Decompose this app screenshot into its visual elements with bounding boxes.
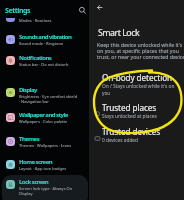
- staticText: Brightness · Eye comfort shield: [19, 94, 78, 99]
- staticText: Themes: [19, 135, 40, 143]
- staticText: On-body detection: [102, 72, 172, 83]
- staticText: Smart Lock: [98, 27, 140, 39]
- staticText: Stays unlocked at places: [102, 113, 157, 120]
- button[interactable]: Notifications: [0, 53, 89, 73]
- staticText: Layout · App icon badges: [19, 166, 67, 171]
- staticText: · Navigation bar: [19, 99, 49, 104]
- button[interactable]: Sounds and vibration: [0, 32, 89, 52]
- button[interactable]: Modes · Routines: [0, 15, 89, 28]
- staticText: Sounds and vibration: [19, 33, 72, 41]
- staticText: Keep this device unlocked while it's on …: [97, 41, 184, 61]
- button[interactable]: Home screen: [0, 157, 89, 177]
- button[interactable]: Themes: [0, 134, 89, 154]
- staticText: Wallpapers · Color palette: [19, 119, 68, 124]
- staticText: Settings: [5, 6, 31, 16]
- staticText: Trusted places: [102, 102, 157, 113]
- staticText: you: [102, 90, 111, 96]
- staticText: Status bar · Do not disturb: [19, 62, 69, 67]
- staticText: Modes · Routines: [19, 18, 52, 23]
- staticText: Home screen: [19, 158, 53, 166]
- button[interactable]: Trusted places: [93, 98, 184, 122]
- staticText: On / Stays unlocked while it's on: [102, 83, 175, 90]
- staticText: Wallpaper and style: [19, 111, 68, 119]
- button[interactable]: Search: [77, 5, 88, 16]
- button[interactable]: Lock screen: [0, 177, 89, 199]
- staticText: Display: [19, 191, 33, 196]
- staticText: Themes · Wallpapers · Icons: [19, 143, 72, 148]
- button[interactable]: Trusted devices: [93, 122, 184, 146]
- staticText: Trusted devices: [102, 126, 160, 137]
- button[interactable]: On-body detection: [93, 68, 184, 92]
- staticText: Sound mode · Ringtone: [19, 41, 64, 46]
- staticText: Notifications: [19, 54, 52, 62]
- staticText: 0 devices added: [102, 137, 139, 144]
- staticText: Screen lock type · Always On: [19, 186, 73, 191]
- button[interactable]: Display: [0, 85, 89, 107]
- button[interactable]: Wallpaper and style: [0, 110, 89, 130]
- staticText: Display: [19, 86, 37, 94]
- button[interactable]: Back: [94, 2, 105, 13]
- staticText: Lock screen: [19, 178, 49, 186]
